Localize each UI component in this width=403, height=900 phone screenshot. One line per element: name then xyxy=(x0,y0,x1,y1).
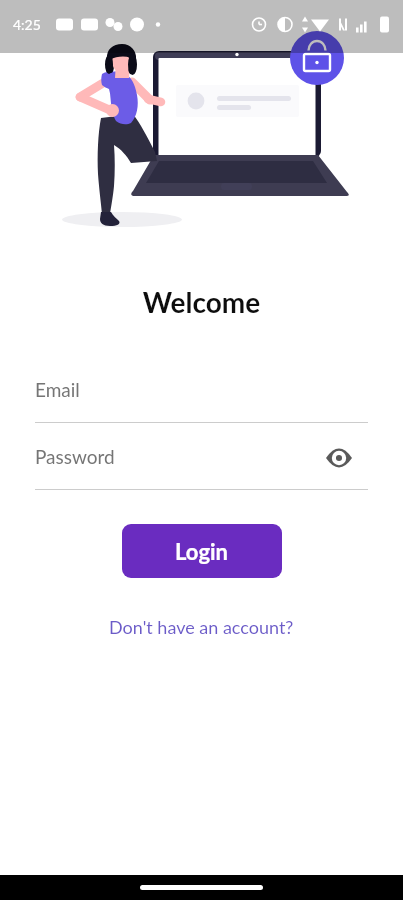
staticText: 4:25 xyxy=(13,16,41,33)
button[interactable]: Show password xyxy=(324,443,354,473)
button[interactable]: Login xyxy=(122,524,282,578)
button[interactable]: Don't have an account? xyxy=(97,610,306,644)
staticText: Password xyxy=(35,445,115,468)
staticText: Login xyxy=(175,538,229,564)
button[interactable]: Email xyxy=(35,378,368,422)
button[interactable]: Password xyxy=(35,445,368,489)
staticText: Don't have an account? xyxy=(109,616,294,638)
staticText: Welcome xyxy=(0,285,403,319)
staticText: Email xyxy=(35,378,80,401)
